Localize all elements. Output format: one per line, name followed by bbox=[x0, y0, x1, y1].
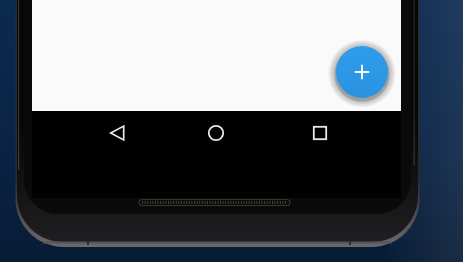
button[interactable]: Back bbox=[88, 112, 148, 154]
button[interactable]: Recent apps bbox=[290, 112, 350, 154]
button[interactable]: Add bbox=[336, 46, 388, 98]
button[interactable]: Home bbox=[186, 112, 246, 154]
